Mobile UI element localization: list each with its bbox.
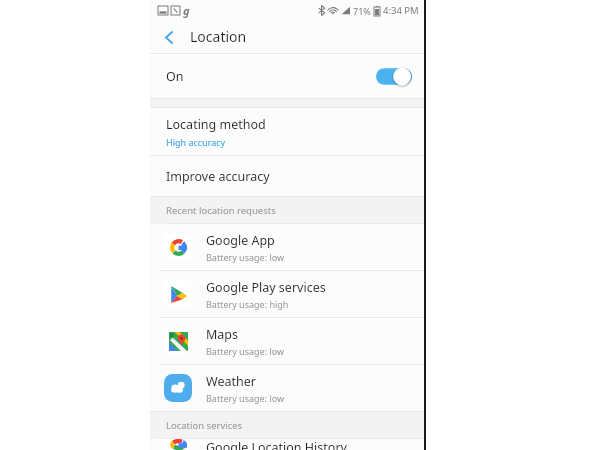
- staticText: Google Play services: [206, 279, 326, 296]
- staticText: On: [166, 68, 184, 85]
- staticText: g: [183, 3, 190, 18]
- staticText: Recent location requests: [166, 204, 276, 217]
- button[interactable]: Google App: [150, 224, 426, 270]
- staticText: 4:34 PM: [383, 4, 419, 17]
- staticText: Weather: [206, 373, 256, 390]
- staticText: Battery usage: low: [206, 392, 285, 404]
- staticText: Google App: [206, 232, 275, 249]
- button[interactable]: Back: [156, 24, 182, 50]
- staticText: Improve accuracy: [166, 168, 270, 185]
- staticText: Battery usage: low: [206, 251, 285, 263]
- staticText: Google Location History: [206, 439, 347, 450]
- button[interactable]: Maps: [150, 318, 426, 364]
- staticText: Location services: [166, 419, 243, 432]
- button[interactable]: Weather: [150, 365, 426, 411]
- staticText: Maps: [206, 326, 239, 343]
- staticText: Location: [190, 27, 247, 46]
- staticText: High accuracy: [166, 136, 226, 148]
- staticText: Locating method: [166, 116, 266, 133]
- button[interactable]: Google Location History: [150, 439, 426, 450]
- staticText: Battery usage: low: [206, 345, 285, 357]
- button[interactable]: Google Play services: [150, 271, 426, 317]
- button[interactable]: On: [150, 54, 426, 98]
- staticText: 71%: [353, 5, 371, 17]
- button[interactable]: Improve accuracy: [150, 156, 426, 196]
- staticText: Battery usage: high: [206, 298, 289, 310]
- button[interactable]: Locating method: [150, 108, 426, 155]
